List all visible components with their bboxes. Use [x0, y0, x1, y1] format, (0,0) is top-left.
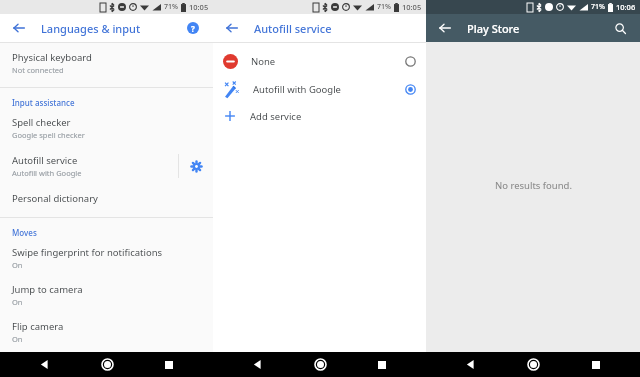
staticText: On [12, 260, 23, 270]
staticText: Autofill service [12, 154, 78, 167]
staticText: 71% [591, 2, 605, 12]
staticText: No results found. [495, 179, 572, 192]
button[interactable]: Back [436, 19, 454, 37]
staticText: 10:05 [189, 2, 209, 12]
staticText: Personal dictionary [12, 192, 98, 205]
staticText: ? [191, 23, 195, 34]
staticText: Google spell checker [12, 130, 85, 140]
button[interactable]: Back [238, 352, 276, 377]
staticText: 10:05 [402, 2, 422, 12]
staticText: 71% [164, 2, 178, 12]
button[interactable]: Swipe fingerprint for notifications [0, 242, 213, 274]
button[interactable]: Recents [363, 352, 401, 377]
button[interactable]: Physical keyboard [0, 43, 213, 79]
staticText: On [12, 334, 23, 344]
staticText: None [251, 55, 276, 68]
button[interactable]: Back [223, 19, 241, 37]
staticText: Input assistance [12, 97, 75, 108]
staticText: On [12, 297, 23, 307]
staticText: Autofill with Google [12, 168, 82, 178]
button[interactable]: Personal dictionary [0, 188, 213, 209]
staticText: Moves [12, 227, 37, 238]
staticText: Languages & input [41, 21, 141, 36]
button[interactable]: Home [88, 352, 126, 377]
staticText: Not connected [12, 65, 64, 75]
staticText: Add service [250, 110, 302, 123]
staticText: Swipe fingerprint for notifications [12, 246, 163, 259]
button[interactable]: Flip camera [0, 316, 213, 348]
button[interactable]: Home [301, 352, 339, 377]
staticText: Physical keyboard [12, 51, 92, 64]
button[interactable]: None [213, 48, 426, 75]
staticText: Jump to camera [12, 283, 83, 296]
staticText: Flip camera [12, 320, 64, 333]
button[interactable]: Home [514, 352, 552, 377]
staticText: Spell checker [12, 116, 71, 129]
staticText: 71% [377, 2, 391, 12]
button[interactable]: Autofill service [0, 150, 178, 182]
button[interactable]: Autofill settings [179, 149, 213, 183]
button[interactable]: Add service [213, 103, 426, 129]
staticText: Play Store [467, 21, 520, 36]
staticText: Autofill service [254, 21, 332, 36]
staticText: 10:06 [616, 2, 636, 12]
button[interactable]: Recents [577, 352, 615, 377]
button[interactable]: Recents [150, 352, 188, 377]
button[interactable]: Spell checker [0, 112, 213, 144]
button[interactable]: Back [451, 352, 489, 377]
button[interactable]: Search [610, 18, 630, 38]
button[interactable]: Help [183, 18, 203, 38]
button[interactable]: Jump to camera [0, 279, 213, 311]
button[interactable]: Back [25, 352, 63, 377]
button[interactable]: Autofill with Google [213, 75, 426, 103]
button[interactable]: Back [10, 19, 28, 37]
staticText: Autofill with Google [253, 83, 341, 96]
